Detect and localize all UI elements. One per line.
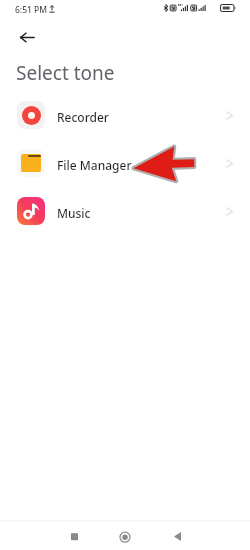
button[interactable]: Recorder bbox=[0, 101, 250, 129]
button[interactable]: Music bbox=[0, 197, 250, 225]
button[interactable]: File Manager bbox=[0, 149, 250, 177]
staticText: Music bbox=[57, 205, 91, 221]
button[interactable]: Recent apps bbox=[52, 515, 96, 550]
staticText: Recorder bbox=[57, 109, 109, 125]
staticText: File Manager bbox=[57, 157, 132, 173]
button[interactable]: Home bbox=[103, 515, 147, 550]
staticText: Select tone bbox=[16, 60, 115, 86]
button[interactable]: Back bbox=[13, 26, 41, 48]
button[interactable]: Back bbox=[155, 515, 199, 550]
staticText: 6:51 PM bbox=[15, 4, 48, 16]
